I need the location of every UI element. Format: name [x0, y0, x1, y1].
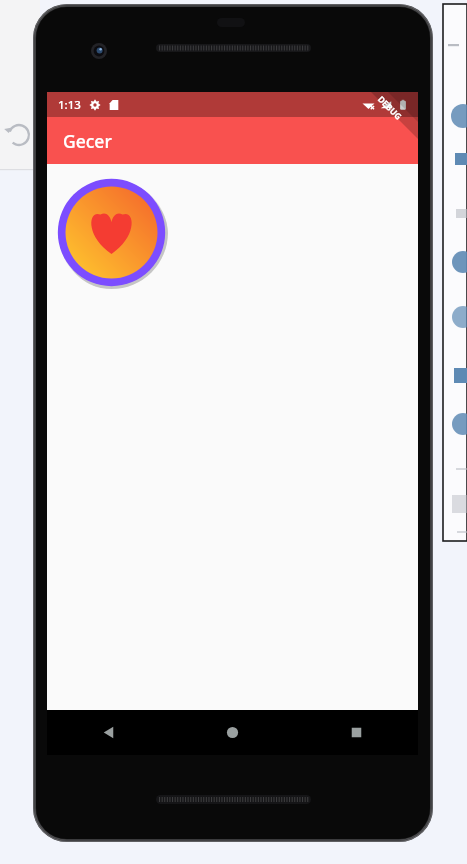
staticText: Gecer: [63, 129, 112, 153]
button[interactable]: Favourite: [55, 176, 168, 289]
button[interactable]: Rotate: [4, 120, 34, 150]
staticText: 1:13: [58, 97, 81, 113]
button[interactable]: Gecer: [47, 117, 418, 164]
staticText: DEBUG: [375, 93, 404, 123]
button[interactable]: Home: [170, 710, 294, 755]
button[interactable]: Recent apps: [294, 710, 418, 755]
button[interactable]: Back: [47, 710, 170, 755]
